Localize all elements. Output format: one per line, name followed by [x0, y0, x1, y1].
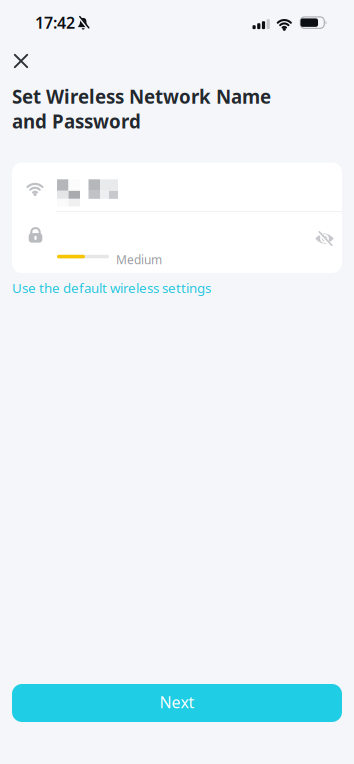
staticText: Medium	[116, 252, 162, 267]
button[interactable]: Close	[14, 54, 28, 68]
staticText: and Password	[12, 109, 141, 134]
button[interactable]: Next	[12, 684, 342, 722]
staticText: 17:42	[35, 12, 75, 33]
staticText: Set Wireless Network Name	[12, 84, 271, 109]
button[interactable]: Use the default wireless settings	[12, 279, 211, 297]
staticText: Use the default wireless settings	[12, 279, 211, 297]
button[interactable]: Show password	[315, 232, 342, 253]
staticText: Next	[159, 691, 194, 713]
